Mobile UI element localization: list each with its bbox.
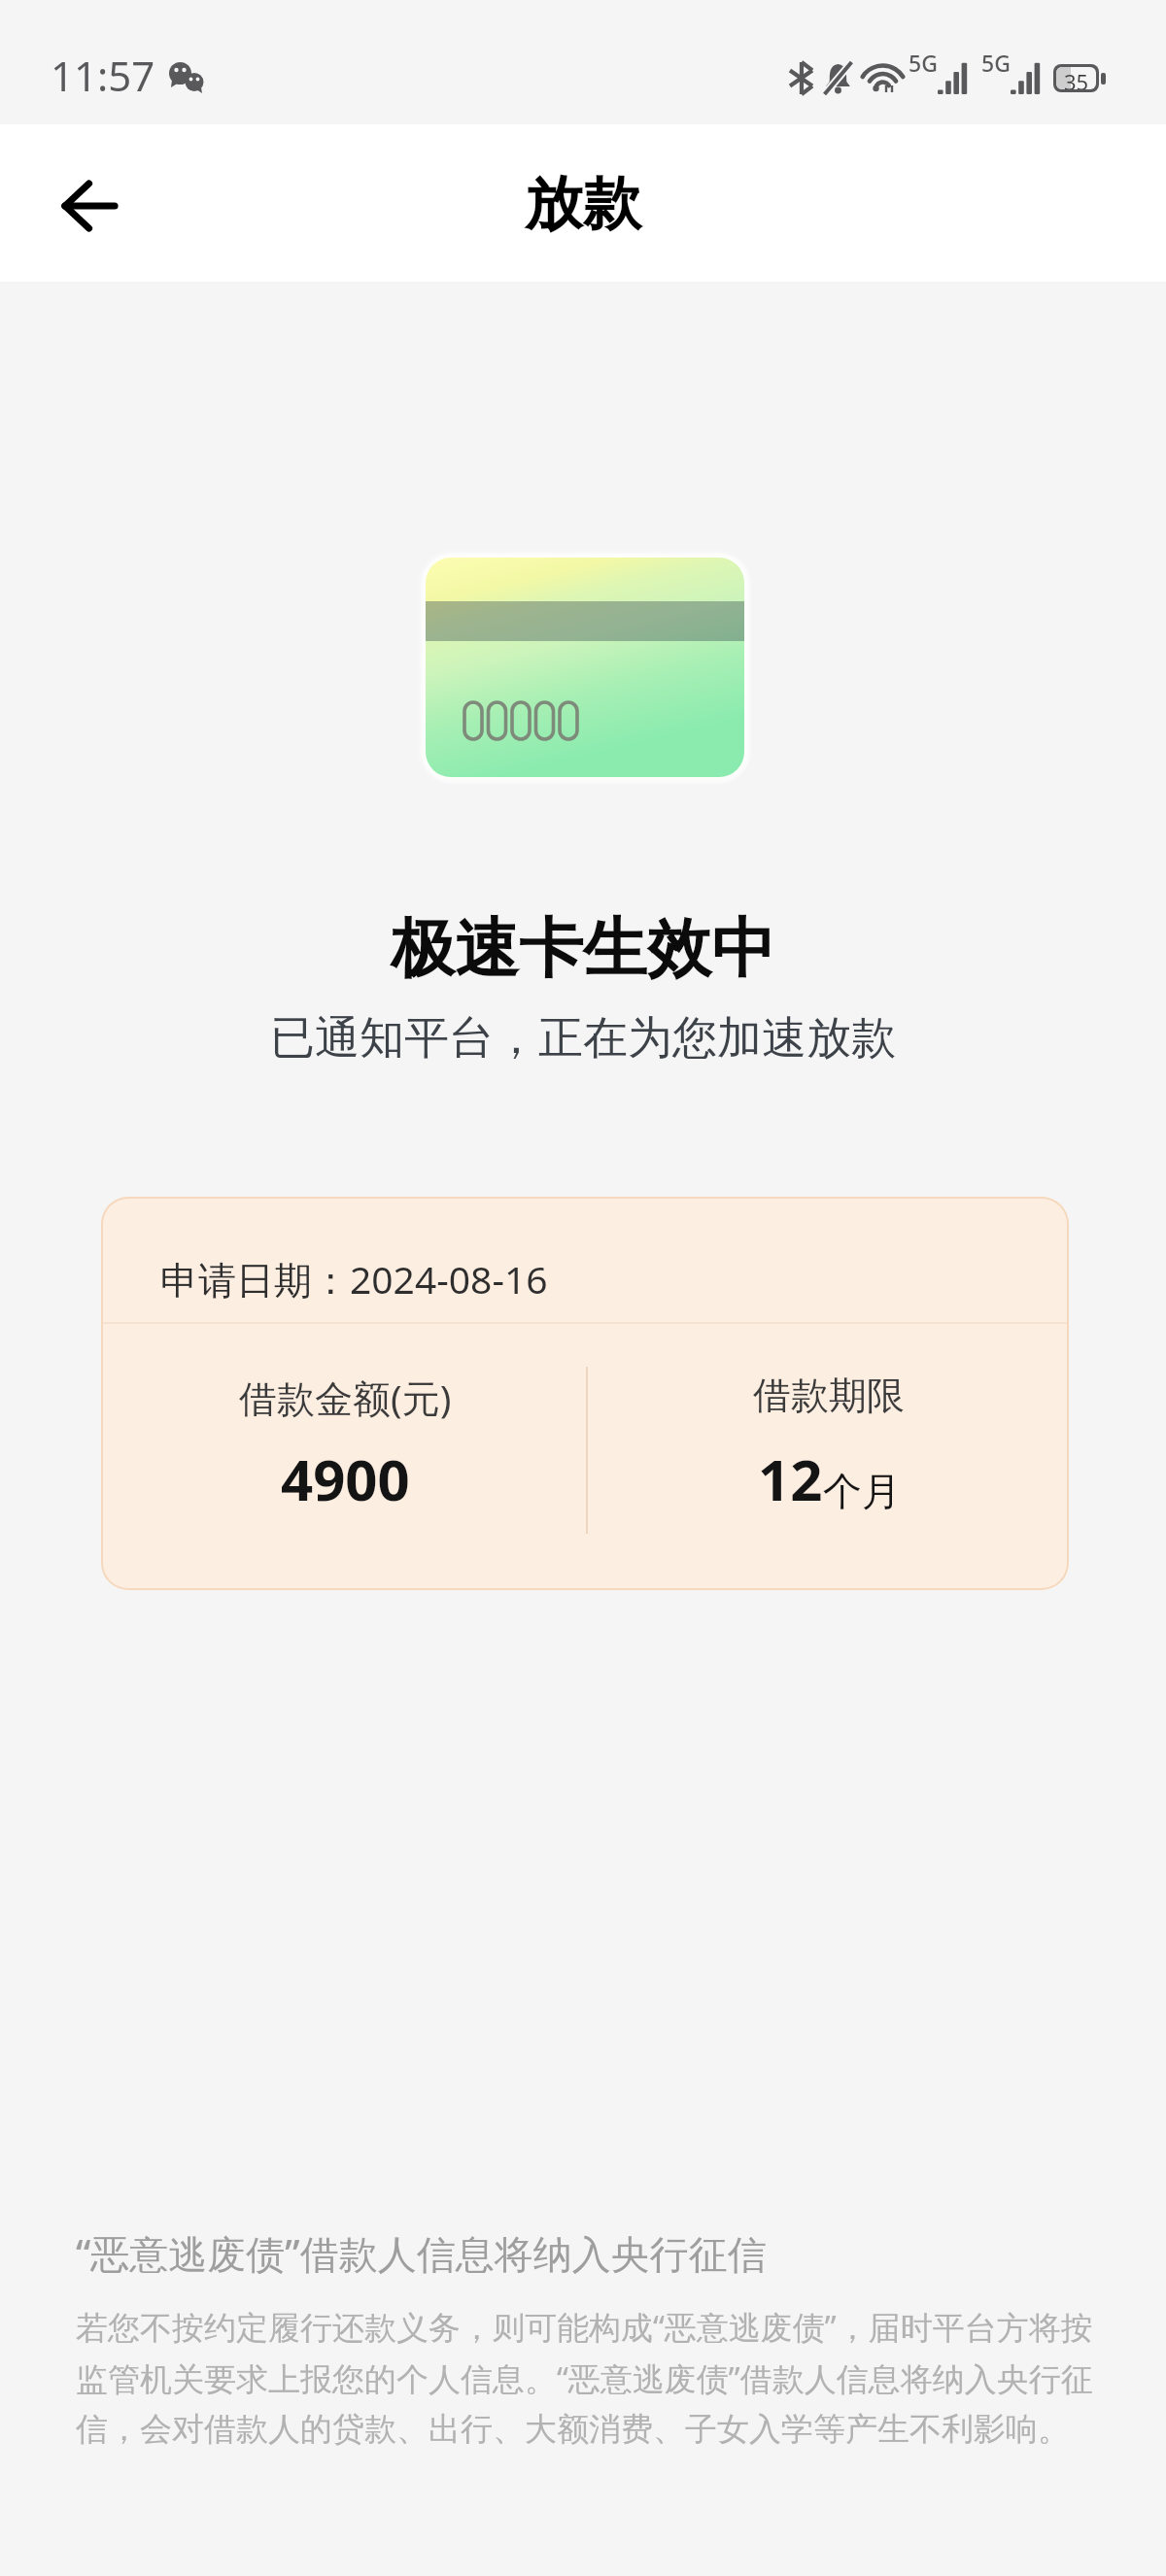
staticText: 若您不按约定履行还款义务，则可能构成“恶意逃废债”，届时平台方将按监管机关要求上… [76,2305,1098,2450]
staticText: 极速卡生效中 [0,908,1166,989]
staticText: 申请日期：2024-08-16 [160,1253,548,1305]
staticText: 5G [981,48,1011,78]
staticText: 个月 [823,1467,901,1515]
staticText: 已通知平台，正在为您加速放款 [0,1010,1166,1067]
staticText: 借款金额(元) [239,1372,452,1423]
staticText: 借款期限 [753,1372,905,1419]
staticText: 11:57 [51,48,155,103]
staticText: 4900 [281,1441,410,1517]
staticText: “恶意逃废债”借款人信息将纳入央行征信 [76,2226,767,2280]
staticText: 5G [909,48,938,78]
staticText: 35 [1064,67,1089,89]
staticText: 放款 [525,167,641,241]
staticText: 12 [758,1441,823,1517]
button[interactable]: Back [35,153,142,259]
